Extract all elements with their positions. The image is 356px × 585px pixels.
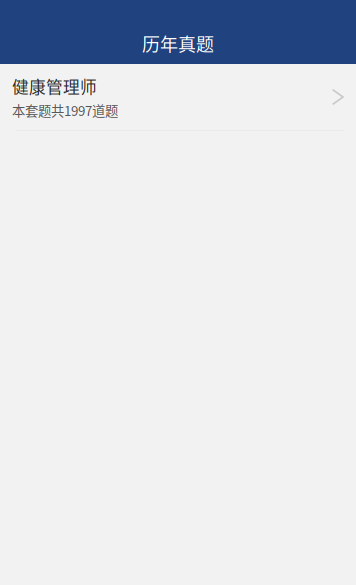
staticText: 历年真题: [142, 30, 214, 57]
button[interactable]: 健康管理师: [0, 64, 356, 131]
staticText: 健康管理师: [12, 74, 97, 98]
staticText: 本套题共1997道题: [12, 100, 118, 120]
